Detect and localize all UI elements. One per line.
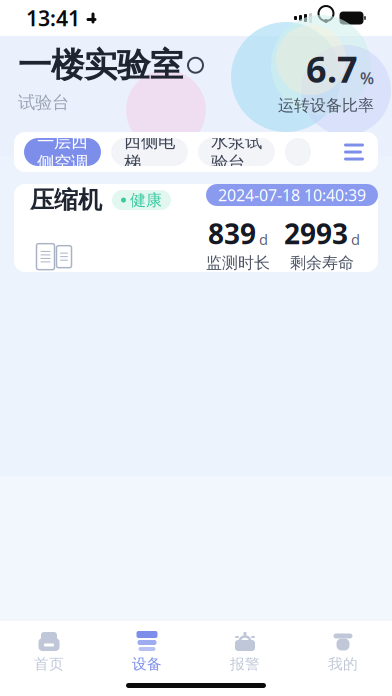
staticText: 6.7 [306, 45, 358, 93]
button[interactable]: 压缩机 [14, 184, 378, 272]
staticText: 2993 [284, 215, 348, 252]
staticText: 健康 [130, 190, 162, 210]
button[interactable]: Filter [330, 132, 378, 172]
staticText: 设备 [132, 655, 162, 673]
button[interactable]: 首页 [0, 627, 98, 675]
staticText: 839 [208, 215, 256, 252]
staticText: 水泵试验台 [211, 131, 262, 173]
staticText: 剩余寿命 [290, 253, 354, 273]
staticText: 我的 [328, 655, 358, 673]
button[interactable]: 报警 [196, 627, 294, 675]
button[interactable]: 一层西侧空调 [24, 138, 101, 166]
staticText: 压缩机 [30, 185, 102, 215]
staticText: 试验台 [18, 92, 69, 113]
staticText: 西侧电梯 [124, 131, 175, 173]
button[interactable]: 水泵试验台 [198, 138, 275, 166]
staticText: 首页 [34, 655, 64, 673]
staticText: d [259, 229, 268, 249]
staticText: 监测时长 [206, 253, 270, 273]
staticText: 一楼实验室 [18, 45, 183, 86]
staticText: % [360, 67, 374, 88]
staticText: 2024-07-18 10:40:39 [218, 184, 366, 206]
staticText: d [351, 229, 360, 249]
staticText: 报警 [230, 655, 260, 673]
staticText: 13:41 [26, 4, 80, 32]
staticText: 运转设备比率 [278, 96, 374, 115]
button[interactable]: 设备 [98, 627, 196, 675]
button[interactable] [285, 138, 311, 166]
staticText: 一层西侧空调 [37, 131, 88, 173]
button[interactable]: Refresh [188, 58, 203, 73]
button[interactable]: 我的 [294, 627, 392, 675]
button[interactable]: 西侧电梯 [111, 138, 188, 166]
